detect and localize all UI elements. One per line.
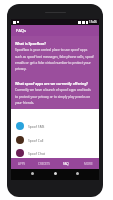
button[interactable]: CREDITS — [33, 158, 55, 169]
staticText: Spoofbox is your central place to use sp… — [15, 48, 94, 71]
staticText: APPS — [18, 162, 26, 166]
staticText: FAQ — [63, 162, 69, 166]
staticText: FAQs — [16, 28, 27, 34]
button[interactable]: Spoof SMS — [11, 119, 99, 133]
staticText: Spoof Chat — [28, 151, 45, 155]
staticText: Spoof Call — [28, 138, 44, 142]
button[interactable]: MORE — [77, 158, 99, 169]
staticText: MORE — [84, 162, 93, 166]
button[interactable]: Spoof Chat — [11, 147, 99, 158]
staticText: 15:46 — [89, 20, 97, 24]
staticText: Spoof SMS — [28, 124, 45, 128]
staticText: What spoof apps are we currently offerin… — [15, 81, 88, 86]
staticText: Currently we have a bunch of spoof apps … — [15, 88, 91, 105]
button[interactable]: Spoof Call — [11, 133, 99, 147]
button[interactable]: FAQ — [55, 158, 77, 169]
staticText: What is Spoofbox? — [15, 41, 46, 46]
button[interactable]: APPS — [11, 158, 33, 169]
staticText: CREDITS — [38, 162, 50, 166]
